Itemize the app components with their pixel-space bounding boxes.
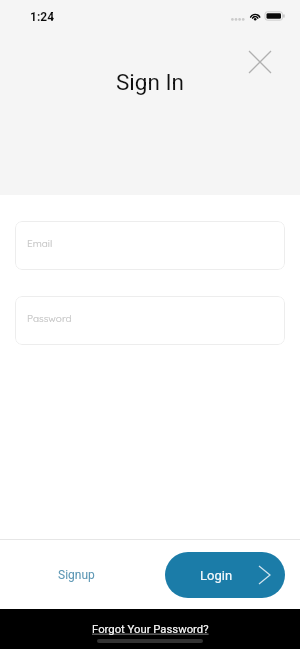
staticText: Signup	[58, 568, 95, 582]
staticText: 1:24	[30, 10, 55, 24]
staticText: Password	[27, 312, 72, 325]
button[interactable]: Login	[165, 552, 285, 598]
button[interactable]: Close	[246, 48, 274, 76]
button[interactable]: Email	[15, 221, 285, 270]
staticText: Sign In	[116, 69, 185, 95]
button[interactable]: Signup	[48, 560, 105, 590]
button[interactable]: Forgot Your Password?	[86, 622, 215, 637]
staticText: Email	[27, 237, 53, 250]
staticText: Forgot Your Password?	[92, 623, 209, 636]
button[interactable]: Password	[15, 296, 285, 345]
staticText: Login	[200, 568, 233, 583]
